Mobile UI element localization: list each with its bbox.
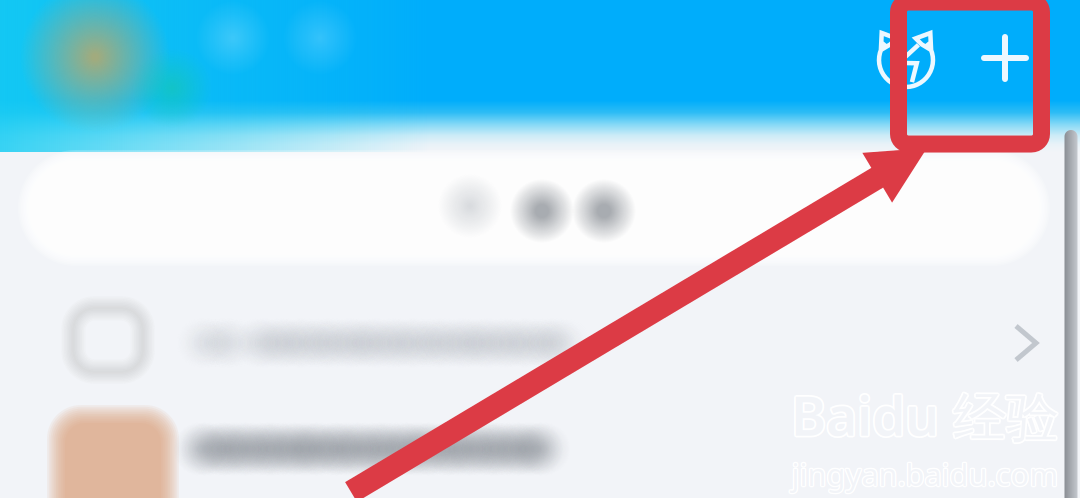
staticText: jingyan.baidu.com — [791, 453, 1058, 493]
button[interactable]: Mascot — [863, 17, 949, 103]
button[interactable]: Add — [961, 14, 1049, 102]
button[interactable] — [0, 297, 1080, 393]
staticText: jingyan.baidu.com — [792, 455, 1059, 495]
staticText: Baidu 经验 — [790, 381, 1058, 452]
staticText: Baidu 经验 — [792, 381, 1060, 452]
staticText: Baidu 经验 — [791, 378, 1059, 449]
button[interactable] — [0, 397, 1080, 498]
staticText: Baidu 经验 — [793, 380, 1061, 451]
staticText: Baidu 经验 — [790, 378, 1058, 449]
staticText: Baidu 经验 — [791, 381, 1059, 452]
button[interactable]: Search — [12, 144, 1056, 272]
staticText: Baidu 经验 — [791, 380, 1059, 451]
staticText: jingyan.baidu.com — [791, 455, 1058, 495]
staticText: jingyan.baidu.com — [793, 454, 1060, 494]
staticText: jingyan.baidu.com — [791, 455, 1058, 496]
staticText: Baidu 经验 — [792, 378, 1060, 449]
staticText: jingyan.baidu.com — [790, 454, 1057, 494]
staticText: jingyan.baidu.com — [791, 454, 1058, 494]
staticText: jingyan.baidu.com — [792, 453, 1059, 493]
staticText: Baidu 经验 — [789, 380, 1057, 451]
staticText: jingyan.baidu.com — [791, 452, 1058, 493]
